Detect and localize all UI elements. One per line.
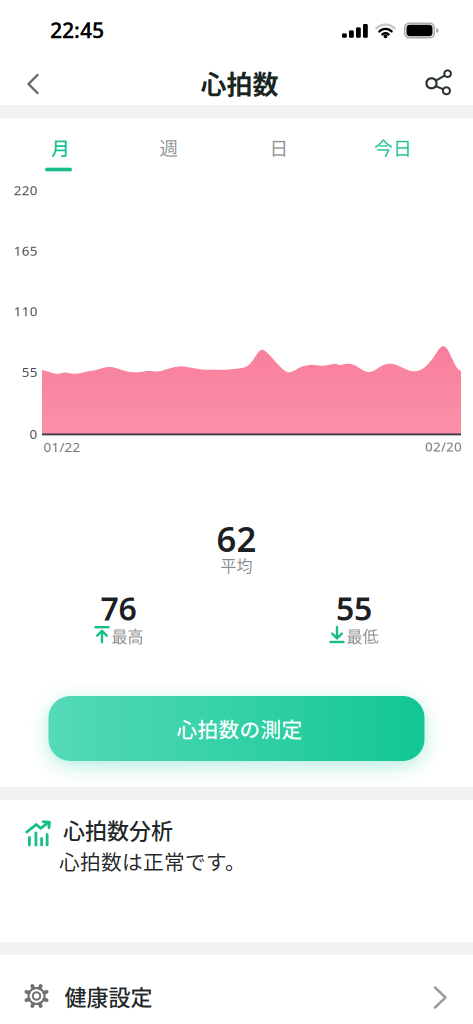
staticText: 02/20 bbox=[425, 437, 462, 455]
staticText: 22:45 bbox=[50, 16, 104, 44]
staticText: 76 bbox=[100, 587, 136, 629]
staticText: 日 bbox=[269, 133, 288, 160]
staticText: 心拍数分析 bbox=[63, 814, 173, 845]
staticText: 週 bbox=[159, 133, 178, 160]
staticText: 月 bbox=[51, 133, 70, 160]
staticText: 健康設定 bbox=[64, 980, 152, 1012]
staticText: 165 bbox=[14, 242, 38, 259]
button[interactable]: 月 bbox=[37, 125, 84, 168]
staticText: 55 bbox=[336, 587, 372, 629]
staticText: 心拍数の測定 bbox=[176, 713, 302, 743]
button[interactable]: 週 bbox=[145, 125, 192, 168]
staticText: 今日 bbox=[374, 133, 412, 160]
staticText: 心拍数 bbox=[200, 64, 278, 102]
staticText: 0 bbox=[30, 425, 38, 443]
staticText: 62 bbox=[216, 515, 256, 561]
staticText: 平均 bbox=[220, 553, 252, 577]
staticText: 55 bbox=[22, 363, 38, 381]
staticText: 最高 bbox=[111, 624, 143, 647]
staticText: 110 bbox=[14, 302, 38, 320]
button[interactable]: 健康設定 bbox=[0, 955, 473, 1024]
staticText: 心拍数は正常です。 bbox=[59, 846, 246, 876]
button[interactable]: Back bbox=[15, 61, 51, 106]
staticText: 220 bbox=[14, 181, 38, 199]
button[interactable]: Share bbox=[415, 61, 461, 107]
button[interactable]: 心拍数の測定 bbox=[48, 696, 424, 761]
button[interactable]: 日 bbox=[255, 125, 302, 168]
button[interactable]: 今日 bbox=[360, 125, 426, 168]
staticText: 最低 bbox=[346, 624, 378, 647]
staticText: 01/22 bbox=[43, 438, 80, 456]
